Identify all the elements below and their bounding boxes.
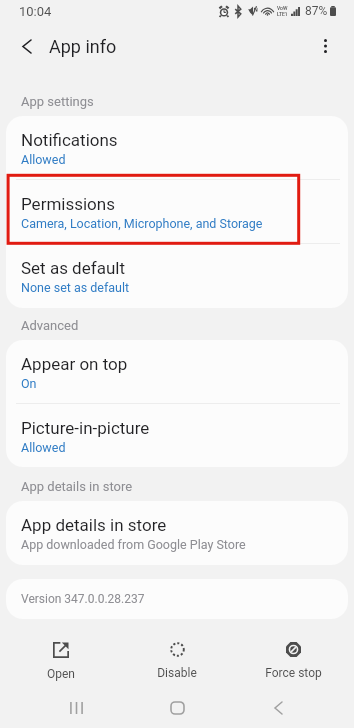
- staticText: On: [21, 376, 37, 391]
- staticText: Notifications: [21, 130, 118, 150]
- button[interactable]: Back: [253, 688, 303, 728]
- staticText: Set as default: [21, 258, 125, 278]
- staticText: Permissions: [21, 194, 115, 214]
- button[interactable]: More options: [312, 33, 338, 59]
- staticText: Disable: [157, 666, 197, 680]
- staticText: App details in store: [21, 515, 167, 535]
- button[interactable]: Open: [6, 619, 116, 688]
- staticText: App downloaded from Google Play Store: [21, 537, 246, 552]
- staticText: Force stop: [265, 666, 322, 680]
- staticText: App info: [49, 36, 117, 57]
- button[interactable]: Appear on top: [6, 340, 348, 403]
- staticText: Appear on top: [21, 354, 128, 374]
- button[interactable]: Force stop: [238, 619, 348, 688]
- staticText: Advanced: [21, 318, 79, 333]
- button[interactable]: Set as default: [6, 244, 348, 308]
- staticText: LTE1: [277, 11, 288, 17]
- staticText: None set as default: [21, 280, 130, 295]
- button[interactable]: Version 347.0.0.28.237: [6, 579, 348, 619]
- staticText: Picture-in-picture: [21, 418, 150, 438]
- staticText: 87%: [305, 4, 328, 18]
- staticText: Open: [47, 667, 75, 681]
- button[interactable]: Navigate up: [12, 31, 42, 61]
- button[interactable]: Notifications: [6, 116, 348, 179]
- staticText: Allowed: [21, 440, 66, 455]
- staticText: Camera, Location, Microphone, and Storag…: [21, 216, 263, 231]
- staticText: App settings: [21, 94, 94, 109]
- staticText: App details in store: [21, 479, 133, 494]
- button[interactable]: Permissions: [6, 180, 348, 243]
- button[interactable]: Picture-in-picture: [6, 404, 348, 467]
- staticText: VoW: [277, 5, 288, 11]
- staticText: Allowed: [21, 152, 66, 167]
- button[interactable]: App details in store: [6, 501, 348, 565]
- staticText: 10:04: [19, 4, 52, 19]
- button[interactable]: Home: [152, 688, 202, 728]
- button[interactable]: Disable: [122, 619, 232, 688]
- button[interactable]: Recent apps: [51, 688, 101, 728]
- staticText: Version 347.0.0.28.237: [21, 592, 145, 606]
